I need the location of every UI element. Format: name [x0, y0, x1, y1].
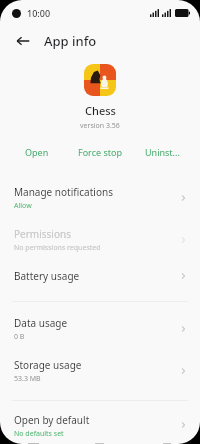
- staticText: Uninst...: [145, 146, 180, 158]
- staticText: Data usage: [14, 316, 68, 330]
- button[interactable]: Data usage: [0, 308, 200, 350]
- staticText: Battery usage: [14, 269, 80, 283]
- button[interactable]: Permissions: [0, 219, 200, 261]
- button[interactable]: Open by default: [0, 405, 200, 444]
- button[interactable]: Uninst...: [131, 141, 194, 163]
- staticText: Open: [25, 146, 49, 158]
- staticText: 53.3 MB: [14, 374, 41, 384]
- staticText: App info: [44, 32, 97, 50]
- staticText: No defaults set: [14, 429, 64, 436]
- staticText: Open by default: [14, 413, 90, 427]
- staticText: version 3.56: [80, 121, 120, 131]
- staticText: Manage notifications: [14, 185, 113, 199]
- button[interactable]: Open: [6, 141, 68, 163]
- staticText: No permissions requested: [14, 243, 101, 253]
- button[interactable]: Battery usage: [0, 261, 200, 291]
- staticText: Force stop: [78, 146, 122, 158]
- staticText: 0 B: [14, 332, 25, 342]
- staticText: Storage usage: [14, 358, 82, 372]
- staticText: 10:00: [27, 7, 51, 19]
- button[interactable]: Back: [12, 30, 34, 52]
- button[interactable]: Manage notifications: [0, 177, 200, 219]
- staticText: Permissions: [14, 227, 71, 241]
- button[interactable]: Force stop: [68, 141, 131, 163]
- staticText: Allow: [14, 201, 32, 211]
- button[interactable]: Storage usage: [0, 350, 200, 392]
- staticText: Chess: [85, 103, 116, 118]
